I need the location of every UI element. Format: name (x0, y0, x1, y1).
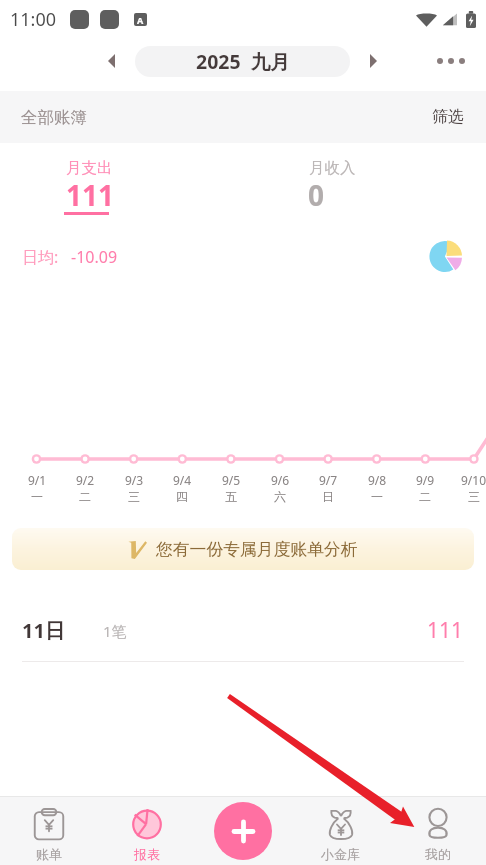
staticText: 9/4 (173, 472, 192, 488)
staticText: 二 (79, 489, 91, 504)
staticText: 账单 (36, 846, 62, 862)
staticText: 9/1 (28, 472, 47, 488)
staticText: 三 (468, 489, 480, 504)
staticText: 9/9 (416, 472, 435, 488)
staticText: 1笔 (103, 621, 127, 641)
staticText: 六 (274, 489, 286, 504)
staticText: 小金库 (321, 846, 360, 862)
staticText: 二 (419, 489, 431, 504)
staticText: 9/7 (319, 472, 338, 488)
staticText: 11日 (22, 617, 65, 644)
button[interactable]: 账单 (0, 796, 98, 865)
button[interactable]: 筛选 (432, 107, 464, 127)
staticText: 月支出 (66, 158, 113, 178)
button[interactable]: 2025 九月 (135, 46, 350, 77)
staticText: 日 (322, 489, 334, 504)
staticText: 9/6 (271, 472, 290, 488)
button[interactable]: Add record (214, 802, 272, 860)
staticText: -10.09 (71, 246, 118, 268)
button[interactable]: 您有一份专属月度账单分析 (12, 528, 474, 570)
staticText: 11:00 (10, 7, 57, 32)
staticText: 您有一份专属月度账单分析 (156, 539, 358, 560)
staticText: 报表 (134, 846, 160, 862)
staticText: 一 (371, 489, 383, 504)
button[interactable]: 小金库 (292, 796, 389, 865)
staticText: 9/3 (125, 472, 144, 488)
staticText: 111 (66, 176, 115, 214)
staticText: 四 (176, 489, 188, 504)
button[interactable]: More options (425, 45, 477, 77)
button[interactable]: 全部账簿 (21, 107, 87, 128)
staticText: 2025 九月 (196, 48, 290, 75)
button[interactable]: Category pie chart (430, 241, 461, 272)
staticText: 9/5 (222, 472, 241, 488)
staticText: 一 (31, 489, 43, 504)
staticText: 月收入 (309, 158, 356, 178)
staticText: 三 (128, 489, 140, 504)
staticText: 0 (308, 176, 325, 214)
button[interactable]: 我的 (389, 796, 486, 865)
staticText: 9/8 (368, 472, 387, 488)
staticText: 111 (427, 616, 464, 645)
button[interactable]: Previous month (95, 45, 127, 77)
staticText: 五 (225, 489, 237, 504)
button[interactable]: 11日 (0, 601, 486, 660)
staticText: 我的 (425, 846, 451, 862)
button[interactable]: 报表 (98, 796, 195, 865)
button[interactable]: Next month (357, 45, 389, 77)
staticText: 9/2 (76, 472, 95, 488)
staticText: 9/10 (461, 472, 486, 488)
staticText: 日均: (22, 246, 59, 268)
staticText: A (137, 14, 144, 26)
